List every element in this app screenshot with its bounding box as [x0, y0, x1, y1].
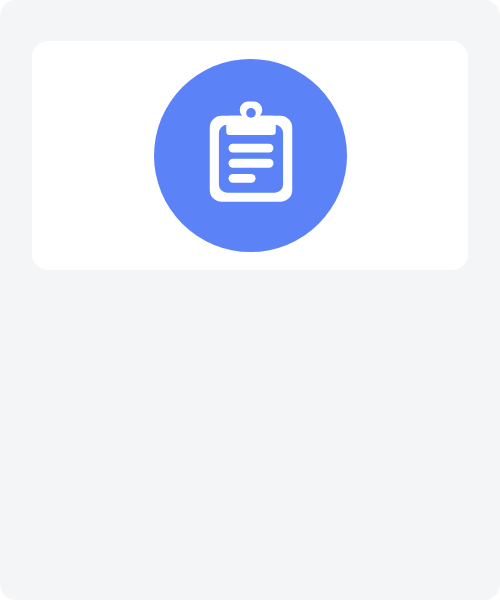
other: Assignment: [154, 59, 347, 252]
button[interactable]: Assignment: [32, 41, 468, 270]
